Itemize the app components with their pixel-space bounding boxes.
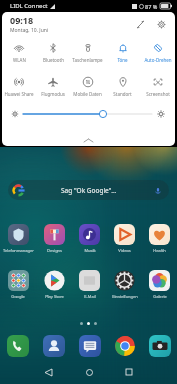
button[interactable]: Standort [105,69,140,103]
button[interactable]: E-Mail [72,270,107,299]
button[interactable]: Telefonmanager [0,224,36,253]
staticText: LIDL Connect [10,2,48,10]
staticText: Standort [113,91,132,97]
staticText: E-Mail [84,294,96,299]
button[interactable]: Nachrichten [79,335,101,357]
staticText: Flugmodus [41,91,65,97]
staticText: 09:18 [10,14,34,26]
button[interactable]: Health [142,224,177,253]
staticText: Montag, 10. Juni [10,27,49,34]
staticText: Screenshot [146,91,170,97]
button[interactable]: Google [0,270,36,299]
button[interactable]: Flugmodus [36,69,70,103]
button[interactable]: Bearbeiten [132,16,148,32]
button[interactable]: WLAN [2,35,36,69]
button[interactable]: Startbildschirm [79,362,99,382]
button[interactable]: Kontakte [43,335,65,357]
button[interactable]: Auto-Drehen [140,35,175,69]
staticText: Bluetooth [43,57,64,63]
button[interactable]: Einstellungen [107,270,142,299]
staticText: Huawei Share [4,91,34,97]
staticText: Musik [84,248,96,253]
button[interactable]: Screenshot [140,69,175,103]
button[interactable]: Taschenlampe [70,35,105,69]
button[interactable]: Bluetooth [36,35,70,69]
staticText: Einstellungen [112,294,138,299]
staticText: Videos [118,248,131,253]
staticText: Mobile Daten [73,91,102,97]
button[interactable]: Huawei Share [2,69,36,103]
staticText: Auto-Drehen [144,57,172,63]
button[interactable]: Einstellungen [153,16,169,32]
button[interactable]: Sag "Ok Google"... [8,180,169,200]
button[interactable]: Kamera [149,335,171,357]
staticText: Play Store [45,294,64,299]
button[interactable]: Chrome [114,335,136,357]
button[interactable]: Videos [107,224,142,253]
button[interactable]: Zuklappen [2,134,175,146]
staticText: Sag "Ok Google"... [61,186,117,195]
staticText: Taschenlampe [72,57,103,63]
button[interactable]: Helligkeit [23,108,152,120]
button[interactable]: Play Store [36,270,72,299]
staticText: Health [153,248,166,253]
staticText: WLAN [13,57,26,63]
button[interactable]: Telefon [7,335,29,357]
staticText: Galerie [153,294,167,299]
button[interactable]: Galerie [142,270,177,299]
staticText: Töne [117,57,128,63]
button[interactable]: Töne [105,35,140,69]
button[interactable]: Übersicht [119,362,139,382]
button[interactable]: Zurück [38,362,58,382]
button[interactable]: Mobile Daten [70,69,105,103]
staticText: Designs [47,248,62,253]
staticText: Telefonmanager [3,248,34,253]
button[interactable]: Designs [36,224,72,253]
staticText: Google [11,294,25,299]
button[interactable]: Musik [72,224,107,253]
staticText: 87 % [145,3,158,10]
